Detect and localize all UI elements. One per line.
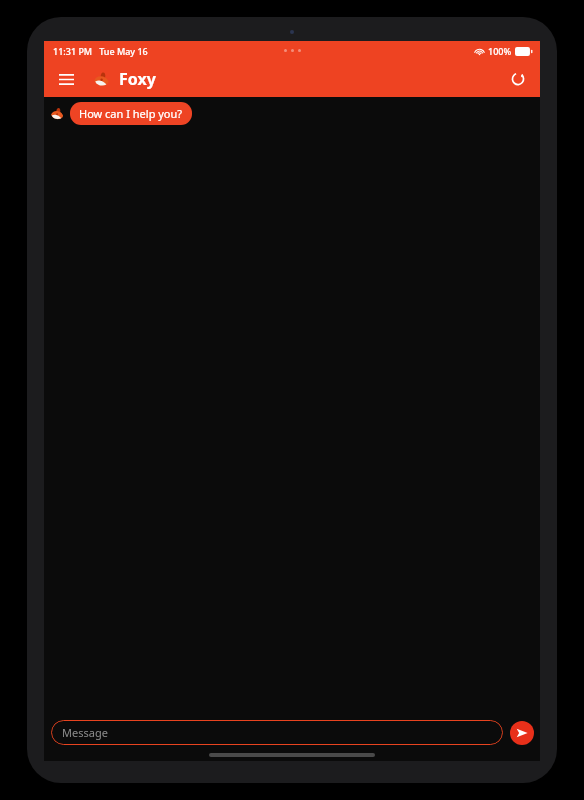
staticText: 11:31 PM Tue May 16 <box>53 45 148 57</box>
staticText: Foxy <box>119 68 156 90</box>
staticText: Message <box>62 725 108 740</box>
button[interactable]: Send message <box>510 721 534 745</box>
staticText: 100% <box>488 45 512 57</box>
button[interactable]: How can I help you? <box>70 102 192 125</box>
button[interactable]: Reset conversation <box>502 63 534 95</box>
button[interactable]: Message <box>51 720 503 745</box>
button[interactable]: Open navigation menu <box>50 63 82 95</box>
staticText: How can I help you? <box>79 106 183 121</box>
